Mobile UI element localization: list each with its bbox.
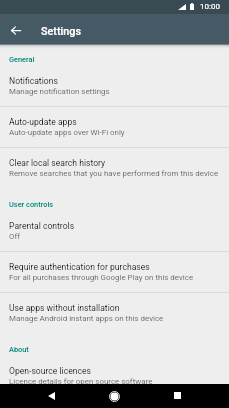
staticText: Settings (41, 25, 81, 38)
button[interactable]: Use apps without installation (0, 293, 229, 334)
staticText: Notifications (9, 76, 58, 86)
button[interactable]: Recent apps (165, 383, 189, 407)
staticText: General (9, 55, 35, 64)
staticText: Manage Android instant apps on this devi… (9, 314, 164, 323)
staticText: Licence details for open source software (9, 377, 153, 386)
staticText: Clear local search history (9, 158, 106, 168)
staticText: Auto-update apps over Wi-Fi only (9, 128, 125, 137)
button[interactable]: Back (39, 384, 63, 408)
staticText: Remove searches that you have performed … (9, 169, 219, 178)
button[interactable]: Auto-update apps (0, 107, 229, 148)
staticText: Use apps without installation (9, 303, 120, 313)
staticText: Parental controls (9, 221, 75, 231)
staticText: 10:00 (200, 2, 220, 11)
staticText: Manage notification settings (9, 87, 110, 96)
staticText: For all purchases through Google Play on… (9, 273, 194, 282)
staticText: Require authentication for purchases (9, 262, 150, 272)
button[interactable]: Open-source licences (0, 356, 229, 397)
button[interactable]: Clear local search history (0, 148, 229, 189)
button[interactable]: Notifications (0, 66, 229, 107)
staticText: Auto-update apps (9, 117, 77, 127)
button[interactable]: Parental controls (0, 211, 229, 252)
staticText: About (9, 345, 29, 354)
button[interactable]: Require authentication for purchases (0, 252, 229, 293)
staticText: Open-source licences (9, 366, 91, 376)
button[interactable]: Navigate up (0, 15, 31, 46)
staticText: Off (9, 232, 20, 241)
staticText: User controls (9, 200, 54, 209)
button[interactable]: Home (102, 384, 126, 408)
